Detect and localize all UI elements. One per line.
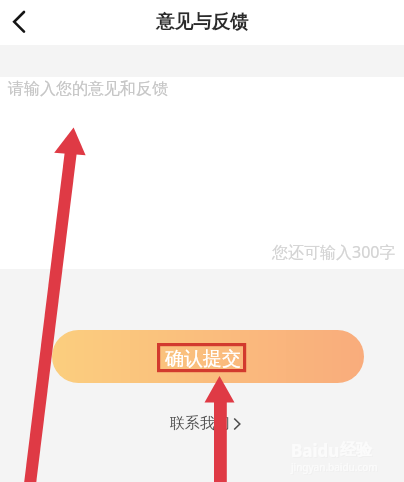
staticText: 联系我们 (170, 414, 230, 433)
button[interactable]: 联系我们 (164, 412, 247, 435)
staticText: 经验 (341, 441, 373, 461)
staticText: 意见与反馈 (156, 10, 249, 33)
staticText: 您还可输入300字 (272, 241, 396, 263)
staticText: 经验 (340, 440, 372, 460)
button[interactable]: Back (0, 1, 44, 45)
staticText: 请输入您的意见和反馈 (8, 79, 168, 99)
staticText: Baidu (291, 439, 340, 462)
staticText: 确认提交 (165, 347, 241, 371)
staticText: Baidu (292, 440, 341, 463)
button[interactable]: 确认提交 (52, 330, 364, 383)
